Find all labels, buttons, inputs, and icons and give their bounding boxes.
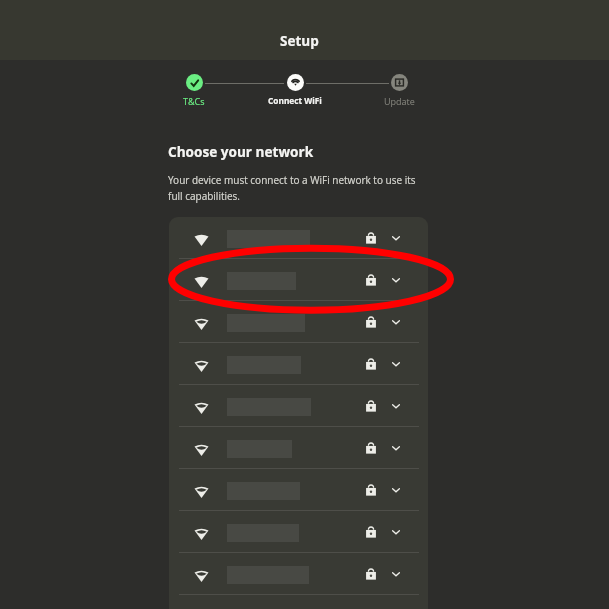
button[interactable]: Secured network — [359, 352, 383, 376]
button[interactable]: Secured network — [169, 469, 428, 511]
staticText: Your device must connect to a WiFi netwo… — [168, 173, 420, 202]
button[interactable]: Expand network details — [384, 226, 408, 250]
button[interactable]: Update — [354, 74, 444, 107]
button[interactable]: Expand network details — [384, 562, 408, 586]
button[interactable]: Secured network — [359, 226, 383, 250]
button[interactable]: Secured network — [169, 343, 428, 385]
button[interactable]: Secured network — [359, 436, 383, 460]
button[interactable]: Secured network — [359, 478, 383, 502]
button[interactable]: Secured network — [359, 268, 383, 292]
button[interactable]: Secured network — [169, 511, 428, 553]
button[interactable]: Connect WiFi — [250, 74, 340, 106]
button[interactable]: Setup — [0, 0, 609, 60]
button[interactable]: Expand network details — [384, 478, 408, 502]
button[interactable]: Secured network — [359, 562, 383, 586]
staticText: Update — [384, 95, 415, 107]
staticText: Setup — [280, 32, 319, 50]
button[interactable]: Expand network details — [384, 520, 408, 544]
button[interactable]: Secured network — [169, 217, 428, 259]
staticText: Choose your network — [168, 142, 314, 161]
button[interactable]: Secured network — [359, 520, 383, 544]
staticText: T&Cs — [183, 95, 205, 107]
button[interactable]: Secured network — [169, 427, 428, 469]
button[interactable]: Secured network — [169, 259, 428, 301]
button[interactable]: T&Cs — [149, 74, 239, 107]
button[interactable]: Expand network details — [384, 352, 408, 376]
button[interactable]: Expand network details — [384, 394, 408, 418]
button[interactable]: Expand network details — [384, 436, 408, 460]
button[interactable]: Expand network details — [384, 310, 408, 334]
button[interactable]: Secured network — [169, 553, 428, 595]
button[interactable]: Secured network — [359, 310, 383, 334]
button[interactable]: Secured network — [169, 385, 428, 427]
staticText: Connect WiFi — [268, 95, 322, 106]
button[interactable]: Secured network — [169, 301, 428, 343]
button[interactable]: Secured network — [359, 394, 383, 418]
button[interactable]: Expand network details — [384, 268, 408, 292]
